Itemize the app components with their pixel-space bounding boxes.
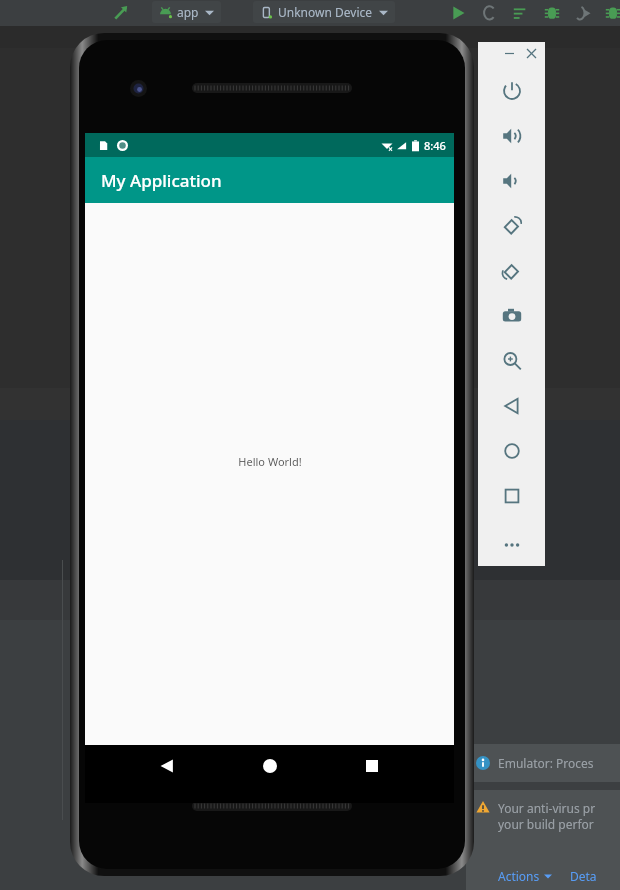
button[interactable]: Take screenshot bbox=[478, 293, 545, 338]
button[interactable]: Run with coverage bbox=[483, 4, 501, 22]
staticText: Your anti-virus pr bbox=[498, 800, 596, 816]
staticText: 8:46 bbox=[424, 138, 446, 153]
button[interactable]: Attach debugger bbox=[574, 4, 592, 22]
button[interactable]: Volume down bbox=[478, 158, 545, 203]
button[interactable]: Home bbox=[249, 745, 291, 787]
button[interactable]: Debug bbox=[543, 4, 561, 22]
button[interactable]: Actions bbox=[498, 868, 552, 884]
button[interactable]: Zoom bbox=[478, 338, 545, 383]
button[interactable]: Deta bbox=[570, 868, 597, 884]
staticText: Emulator: Proces bbox=[498, 755, 594, 771]
button[interactable]: Back bbox=[146, 745, 188, 787]
staticText: Actions bbox=[498, 868, 540, 884]
button[interactable]: Close bbox=[523, 45, 539, 61]
button[interactable]: Sync project bbox=[110, 2, 132, 24]
button[interactable]: Back bbox=[478, 383, 545, 428]
staticText: Hello World! bbox=[238, 454, 302, 469]
button[interactable]: Debug bbox=[604, 4, 620, 22]
button[interactable]: Minimise bbox=[501, 45, 517, 61]
staticText: My Application bbox=[101, 169, 222, 192]
button[interactable]: Home bbox=[478, 428, 545, 473]
button[interactable]: Unknown Device bbox=[253, 1, 395, 23]
staticText: your build perfor bbox=[498, 816, 594, 832]
button[interactable]: Run tests bbox=[512, 5, 530, 23]
staticText: app bbox=[177, 4, 199, 20]
button[interactable]: More bbox=[478, 522, 545, 567]
button[interactable]: Recent apps bbox=[351, 745, 393, 787]
button[interactable]: Power bbox=[478, 68, 545, 113]
button[interactable]: Volume up bbox=[478, 113, 545, 158]
button[interactable]: Rotate right bbox=[478, 248, 545, 293]
button[interactable]: app bbox=[152, 1, 221, 23]
staticText: Unknown Device bbox=[278, 4, 373, 20]
button[interactable]: Rotate left bbox=[478, 203, 545, 248]
button[interactable]: Overview bbox=[478, 473, 545, 518]
button[interactable]: Run bbox=[449, 4, 467, 22]
button[interactable]: My Application bbox=[85, 157, 454, 203]
